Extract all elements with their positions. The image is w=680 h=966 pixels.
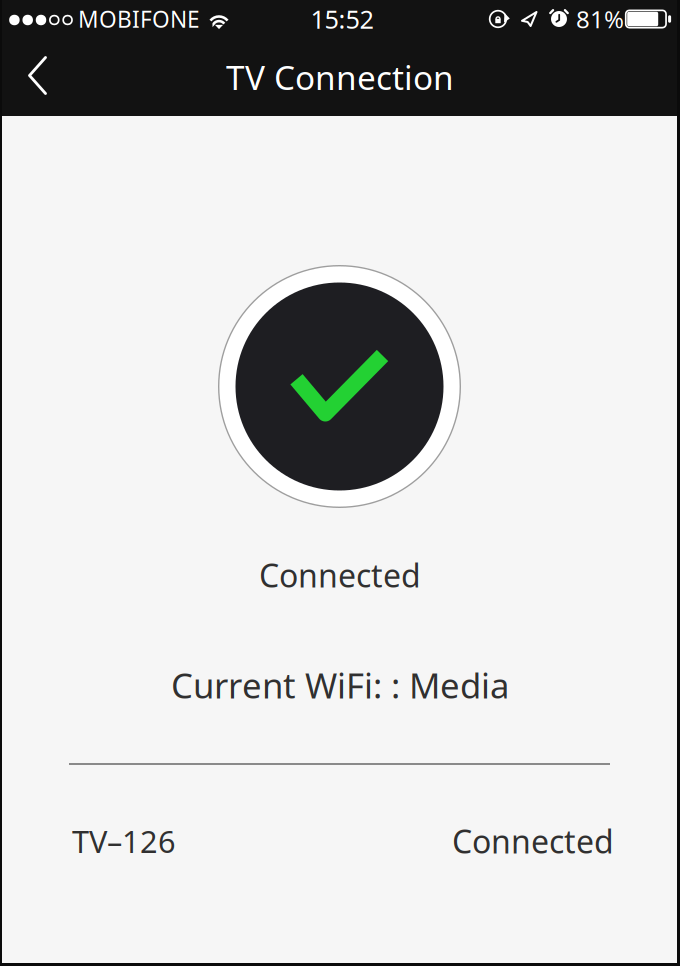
staticText: Current WiFi: : Media <box>171 662 509 708</box>
staticText: 81% <box>576 3 624 35</box>
staticText: TV Connection <box>226 55 454 99</box>
staticText: Connected <box>259 554 421 596</box>
button[interactable]: Back <box>7 40 67 110</box>
staticText: MOBIFONE <box>78 4 200 34</box>
button[interactable]: TV–126 <box>0 800 680 882</box>
staticText: Connected <box>452 820 614 862</box>
staticText: 15:52 <box>310 2 373 36</box>
staticText: TV–126 <box>72 821 176 861</box>
